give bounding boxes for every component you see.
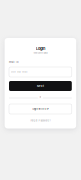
button[interactable]: Login with OTP bbox=[9, 104, 72, 114]
button[interactable]: Forgot Password? bbox=[5, 119, 76, 122]
staticText: Login with OTP bbox=[32, 108, 48, 110]
staticText: Login bbox=[36, 46, 45, 51]
staticText: Welcome back bbox=[33, 52, 47, 54]
staticText: Enter your email bbox=[11, 71, 28, 73]
button[interactable]: Next bbox=[9, 81, 72, 91]
staticText: or bbox=[39, 96, 41, 99]
button[interactable]: Enter your email bbox=[9, 67, 72, 77]
staticText: Next bbox=[37, 84, 44, 88]
staticText: Forgot Password? bbox=[30, 119, 50, 122]
staticText: Email ID bbox=[9, 61, 19, 63]
